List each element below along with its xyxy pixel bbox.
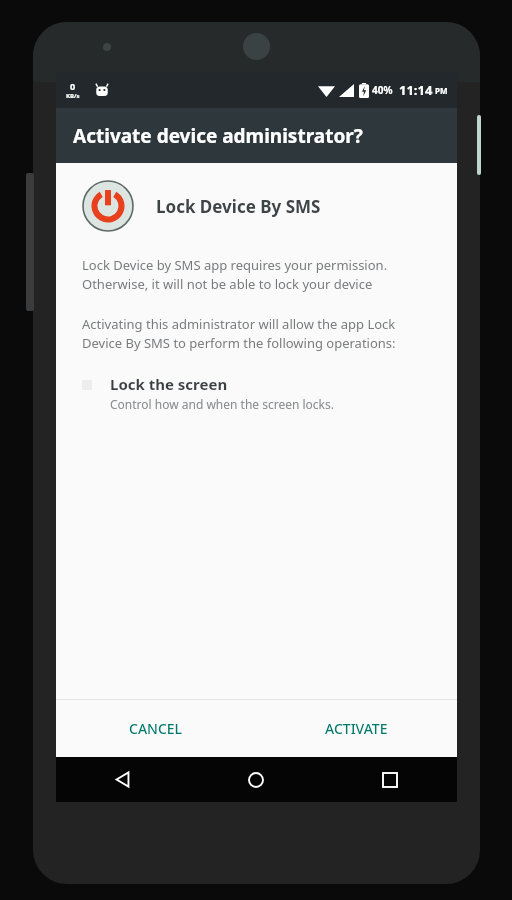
- staticText: Lock Device By SMS: [156, 195, 321, 218]
- staticText: 0: [70, 80, 76, 92]
- staticText: Activate device administrator?: [73, 123, 363, 149]
- button[interactable]: Home: [189, 757, 323, 802]
- staticText: 40%: [372, 83, 393, 97]
- staticText: CANCEL: [129, 719, 183, 738]
- staticText: Lock Device by SMS app requires your per…: [82, 256, 435, 293]
- staticText: Activating this administrator will allow…: [82, 315, 435, 352]
- staticText: Control how and when the screen locks.: [110, 396, 334, 412]
- staticText: ACTIVATE: [325, 719, 388, 738]
- staticText: 11:14: [399, 81, 433, 99]
- button[interactable]: Recent apps: [323, 757, 457, 802]
- button[interactable]: ACTIVATE: [256, 700, 457, 757]
- button[interactable]: CANCEL: [56, 700, 256, 757]
- button[interactable]: Back: [56, 757, 189, 802]
- staticText: KB/s: [66, 92, 80, 100]
- staticText: PM: [435, 85, 448, 96]
- staticText: Lock the screen: [110, 374, 228, 394]
